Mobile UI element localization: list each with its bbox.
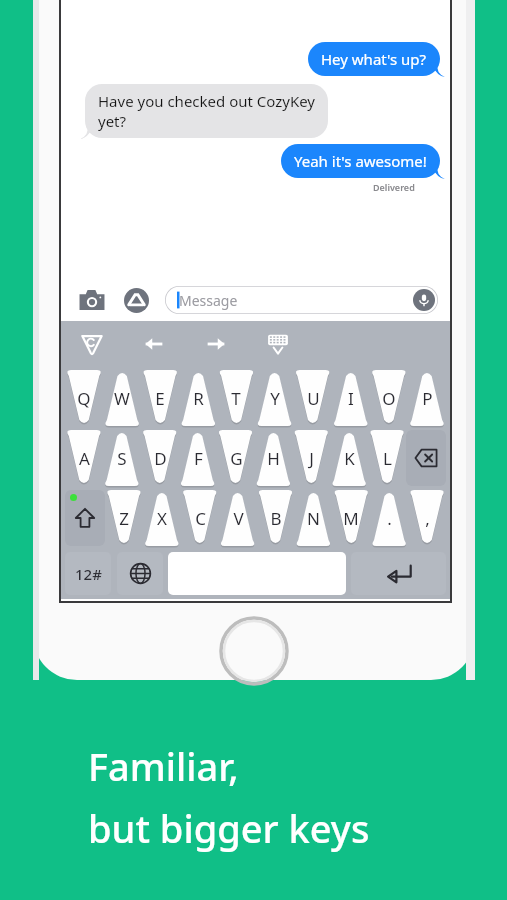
button[interactable]: Z (105, 490, 143, 546)
button[interactable]: S (103, 430, 141, 486)
staticText: C (195, 507, 206, 530)
button[interactable]: Y (256, 370, 294, 426)
staticText: E (155, 387, 165, 410)
button[interactable]: P (408, 370, 446, 426)
button[interactable]: B (257, 490, 295, 546)
staticText: Yeah it's awesome! (294, 151, 427, 171)
staticText: B (270, 507, 282, 530)
staticText: U (307, 387, 320, 410)
button[interactable]: Yeah it's awesome! (281, 144, 440, 178)
button[interactable]: W (103, 370, 141, 426)
button[interactable]: J (292, 430, 330, 486)
button[interactable]: Hey what's up? (308, 42, 440, 76)
staticText: Have you checked out CozyKey yet? (98, 91, 315, 131)
button[interactable]: CozyKey (61, 321, 123, 366)
button[interactable]: L (368, 430, 406, 486)
button[interactable]: C (181, 490, 219, 546)
button[interactable]: App Store (121, 285, 151, 315)
button[interactable]: H (254, 430, 292, 486)
button[interactable]: X (143, 490, 181, 546)
button[interactable]: U (294, 370, 332, 426)
staticText: O (382, 387, 396, 410)
staticText: Familiar, (88, 740, 239, 792)
staticText: D (154, 447, 167, 470)
button[interactable]: Q (65, 370, 103, 426)
button[interactable]: T (217, 370, 255, 426)
staticText: Z (119, 507, 129, 530)
staticText: . (387, 507, 392, 530)
button[interactable]: M (332, 490, 370, 546)
staticText: Y (270, 387, 280, 410)
staticText: 12# (75, 564, 102, 584)
button[interactable]: Home (219, 616, 289, 686)
staticText: G (230, 447, 243, 470)
button[interactable]: Space (168, 552, 346, 595)
staticText: J (309, 447, 314, 470)
staticText: Hey what's up? (321, 49, 427, 69)
staticText: S (117, 447, 127, 470)
button[interactable]: Backspace (406, 430, 446, 486)
button[interactable]: O (370, 370, 408, 426)
staticText: , (425, 507, 430, 530)
button[interactable]: V (219, 490, 257, 546)
button[interactable]: Return (351, 552, 446, 595)
staticText: Delivered (373, 181, 415, 193)
button[interactable]: R (179, 370, 217, 426)
staticText: V (233, 507, 244, 530)
staticText: but bigger keys (88, 802, 370, 854)
staticText: R (193, 387, 204, 410)
button[interactable]: Previous (123, 321, 185, 366)
staticText: M (343, 507, 359, 530)
button[interactable]: Hide keyboard (247, 321, 309, 366)
button[interactable]: Message (165, 286, 438, 314)
button[interactable]: 12# (65, 552, 111, 595)
button[interactable]: . (370, 490, 408, 546)
staticText: I (348, 387, 354, 410)
button[interactable]: E (141, 370, 179, 426)
staticText: P (422, 387, 433, 410)
button[interactable]: Have you checked out CozyKey yet? (85, 84, 328, 138)
staticText: X (157, 507, 167, 530)
button[interactable]: Shift (65, 490, 105, 546)
staticText: A (79, 447, 90, 470)
staticText: Message (179, 291, 238, 310)
staticText: W (114, 387, 130, 410)
button[interactable]: Camera (77, 285, 107, 315)
button[interactable]: G (217, 430, 255, 486)
staticText: T (231, 387, 241, 410)
button[interactable]: Change keyboard (117, 552, 163, 595)
button[interactable]: A (65, 430, 103, 486)
staticText: H (267, 447, 280, 470)
button[interactable]: , (408, 490, 446, 546)
staticText: K (344, 447, 355, 470)
button[interactable]: K (330, 430, 368, 486)
button[interactable]: N (294, 490, 332, 546)
staticText: Q (77, 387, 91, 410)
button[interactable]: D (141, 430, 179, 486)
button[interactable]: I (332, 370, 370, 426)
staticText: N (307, 507, 320, 530)
staticText: F (194, 447, 203, 470)
button[interactable]: Next (185, 321, 247, 366)
button[interactable]: F (179, 430, 217, 486)
staticText: L (383, 447, 392, 470)
button[interactable]: Dictate (413, 289, 435, 311)
